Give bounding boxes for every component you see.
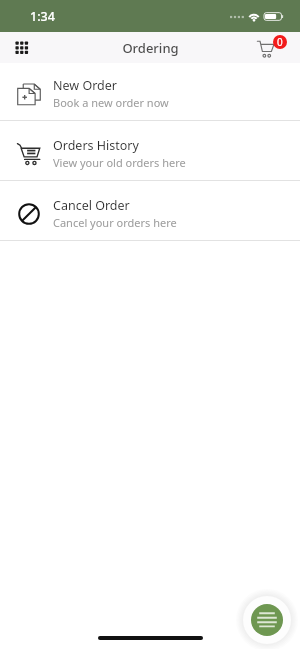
staticText: 0 [277, 35, 283, 49]
button[interactable]: Cart [257, 32, 299, 63]
staticText: View your old orders here [53, 155, 186, 170]
button[interactable]: New Order [0, 63, 300, 120]
button[interactable]: Cancel Order [0, 181, 300, 240]
button[interactable]: Orders History [0, 121, 300, 180]
staticText: Book a new order now [53, 95, 169, 110]
staticText: 1:34 [30, 8, 55, 25]
staticText: Ordering [122, 39, 179, 57]
staticText: Orders History [53, 137, 139, 154]
staticText: Cancel Order [53, 197, 130, 214]
staticText: Cancel your orders here [53, 215, 177, 230]
staticText: New Order [53, 77, 117, 94]
button[interactable]: Menu [243, 596, 291, 644]
button[interactable]: Apps [8, 34, 36, 62]
